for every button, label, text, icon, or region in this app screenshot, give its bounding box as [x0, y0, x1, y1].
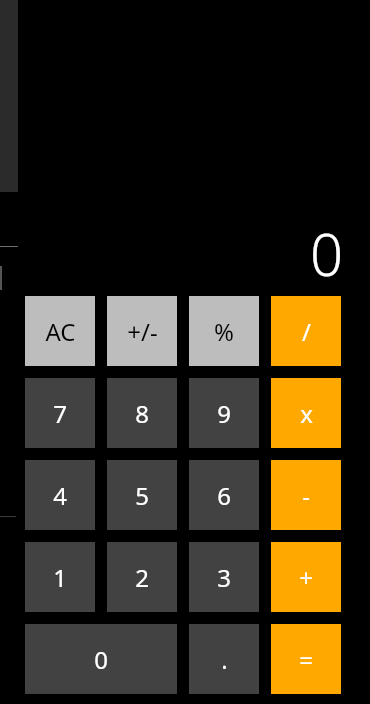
staticText: +/- [127, 315, 158, 348]
staticText: / [302, 315, 311, 348]
staticText: 7 [53, 397, 67, 430]
staticText: 6 [217, 479, 231, 512]
button[interactable]: AC [25, 296, 95, 366]
button[interactable]: 9 [189, 378, 259, 448]
staticText: . [221, 643, 228, 676]
button[interactable]: Equals [271, 624, 341, 694]
staticText: 8 [135, 397, 149, 430]
staticText: 0 [94, 643, 108, 676]
staticText: 9 [217, 397, 231, 430]
button[interactable]: % [189, 296, 259, 366]
button[interactable]: 6 [189, 460, 259, 530]
staticText: % [214, 315, 234, 348]
staticText: 2 [135, 561, 149, 594]
staticText: + [299, 561, 313, 594]
staticText: AC [45, 315, 76, 348]
button[interactable]: 4 [25, 460, 95, 530]
button[interactable]: 1 [25, 542, 95, 612]
staticText: 3 [217, 561, 231, 594]
button[interactable]: Decimal point [189, 624, 259, 694]
staticText: = [299, 643, 313, 676]
staticText: - [302, 479, 310, 512]
button[interactable]: 5 [107, 460, 177, 530]
staticText: 1 [53, 561, 67, 594]
button[interactable]: 8 [107, 378, 177, 448]
button[interactable]: 7 [25, 378, 95, 448]
button[interactable]: Divide [271, 296, 341, 366]
staticText: 4 [53, 479, 67, 512]
button[interactable]: Plus [271, 542, 341, 612]
staticText: 5 [135, 479, 149, 512]
button[interactable]: 0 [25, 624, 177, 694]
button[interactable]: +/- [107, 296, 177, 366]
staticText: x [300, 397, 313, 430]
button[interactable]: Multiply [271, 378, 341, 448]
button[interactable]: Minus [271, 460, 341, 530]
staticText: 0 [309, 214, 343, 280]
button[interactable]: 3 [189, 542, 259, 612]
button[interactable]: 2 [107, 542, 177, 612]
